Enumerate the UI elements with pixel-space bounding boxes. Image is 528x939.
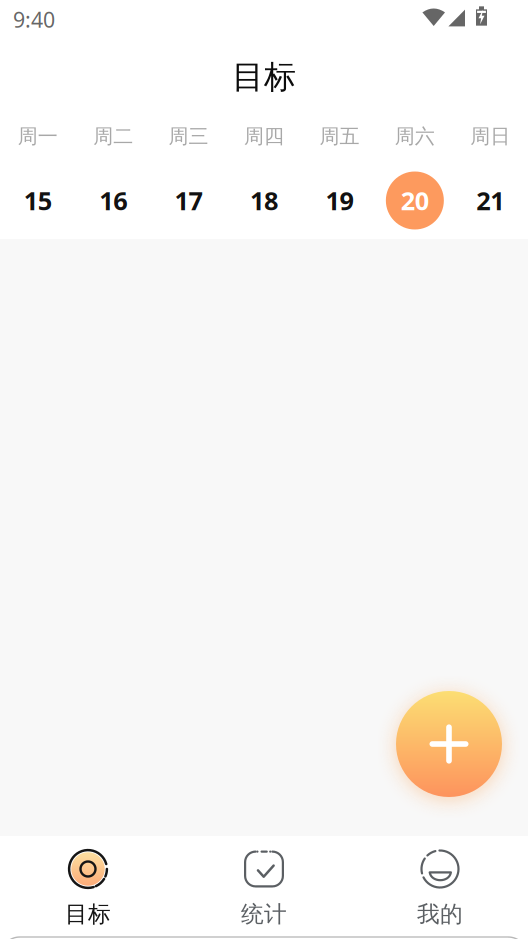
staticText: 目标: [232, 57, 296, 97]
staticText: 目标: [65, 900, 111, 928]
staticText: 周三: [169, 124, 209, 148]
staticText: 16: [99, 184, 127, 217]
button[interactable]: 周五: [302, 118, 377, 238]
button[interactable]: 统计: [176, 846, 352, 928]
button[interactable]: 周一: [0, 118, 75, 238]
staticText: 15: [24, 184, 52, 217]
staticText: 周一: [18, 124, 58, 148]
staticText: 21: [476, 184, 504, 217]
button[interactable]: 周日: [453, 118, 528, 238]
button[interactable]: 我的: [352, 846, 528, 928]
staticText: 19: [325, 184, 353, 217]
button[interactable]: 周四: [226, 118, 302, 238]
button[interactable]: 目标: [0, 846, 176, 928]
staticText: 周六: [395, 124, 435, 148]
staticText: 9:40: [13, 5, 55, 34]
button[interactable]: Add goal: [396, 691, 502, 797]
button[interactable]: 周六: [377, 118, 452, 238]
staticText: 周二: [93, 124, 133, 148]
button[interactable]: 周三: [151, 118, 226, 238]
staticText: 18: [250, 184, 278, 217]
staticText: 我的: [417, 900, 463, 928]
staticText: 周四: [244, 124, 284, 148]
staticText: 17: [175, 184, 203, 217]
staticText: 周五: [319, 124, 359, 148]
staticText: 统计: [241, 900, 287, 928]
staticText: 周日: [470, 124, 510, 148]
button[interactable]: 周二: [75, 118, 151, 238]
staticText: 20: [401, 184, 429, 217]
